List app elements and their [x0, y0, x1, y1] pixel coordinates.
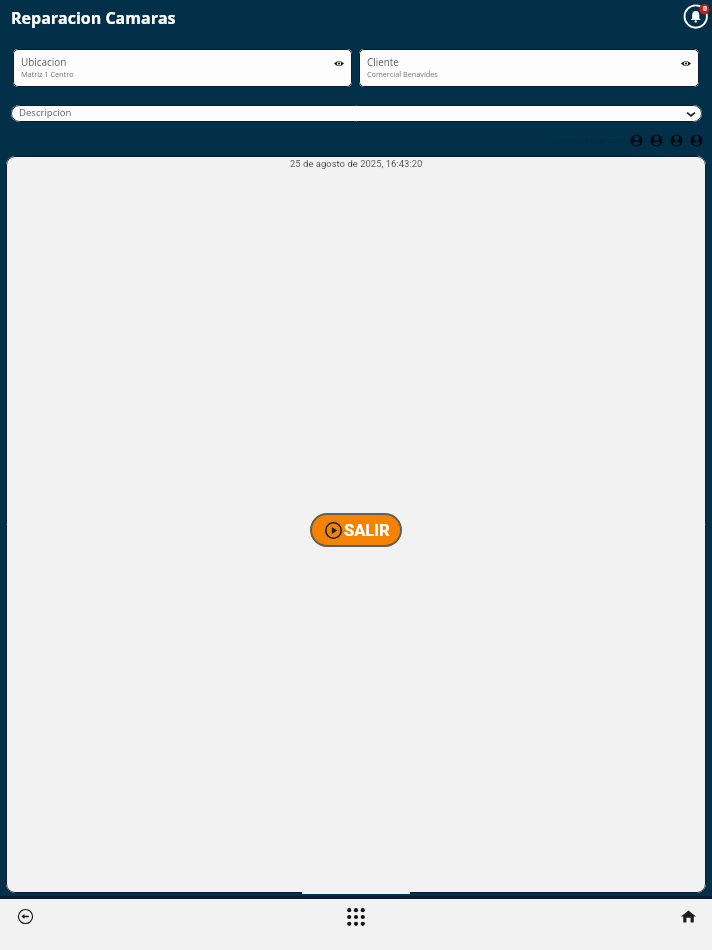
- button[interactable]: Descripcion: [11, 105, 702, 122]
- staticText: 0: [703, 4, 708, 14]
- button[interactable]: Notificaciones: [683, 2, 711, 30]
- button[interactable]: SALIR: [310, 513, 402, 547]
- button[interactable]: Atras: [5, 899, 45, 934]
- button[interactable]: Ver: [679, 56, 693, 71]
- button[interactable]: Empleado: [670, 134, 683, 147]
- button[interactable]: Aplicaciones: [336, 899, 376, 934]
- staticText: Cliente: [367, 55, 399, 68]
- staticText: Matriz 1 Centro: [21, 69, 74, 79]
- button[interactable]: Empleado: [690, 134, 703, 147]
- button[interactable]: Cliente: [359, 49, 699, 87]
- staticText: Descripcion: [19, 106, 72, 119]
- staticText: Comercial Benavides: [367, 69, 438, 79]
- button[interactable]: Ubicacion: [13, 49, 352, 87]
- button[interactable]: Empleado: [630, 134, 643, 147]
- staticText: Ubicacion: [21, 55, 67, 68]
- staticText: 25 de agosto de 2025, 16:43:20: [290, 158, 423, 169]
- staticText: SALIR: [344, 521, 390, 540]
- staticText: Reparacion Camaras: [11, 7, 176, 29]
- button[interactable]: Ver: [332, 56, 346, 71]
- button[interactable]: Inicio: [668, 899, 708, 934]
- button[interactable]: Empleado: [650, 134, 663, 147]
